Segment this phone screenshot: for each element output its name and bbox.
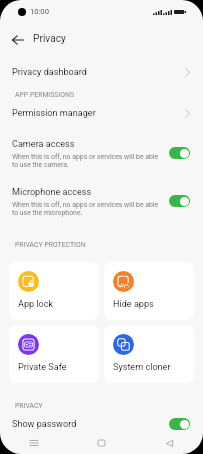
staticText: 10:00 <box>30 7 49 16</box>
button[interactable]: Navigate back <box>6 28 30 52</box>
staticText: to use the microphone. <box>12 209 83 217</box>
button[interactable]: Recent apps <box>0 432 67 454</box>
button[interactable]: Private Safe <box>9 325 99 383</box>
staticText: Private Safe <box>18 362 67 373</box>
button[interactable]: Microphone access <box>0 184 203 224</box>
staticText: Privacy <box>33 33 66 45</box>
staticText: Privacy dashboard <box>12 67 87 78</box>
button[interactable]: App lock <box>9 262 99 320</box>
staticText: Microphone access <box>12 187 92 198</box>
staticText: Permission manager <box>12 108 96 119</box>
staticText: Show password <box>12 419 77 430</box>
button[interactable]: Permission manager <box>0 102 203 124</box>
button[interactable]: Toggle, on <box>169 195 190 207</box>
staticText: Hide apps <box>113 299 154 310</box>
button[interactable]: Toggle, on <box>169 147 190 159</box>
staticText: When this is off, no apps or services wi… <box>12 153 159 161</box>
staticText: When this is off, no apps or services wi… <box>12 201 159 209</box>
staticText: PRIVACY <box>15 402 43 410</box>
button[interactable]: Hide apps <box>104 262 194 320</box>
button[interactable]: Show password <box>0 413 203 435</box>
button[interactable]: System cloner <box>104 325 194 383</box>
button[interactable]: Home <box>67 432 135 454</box>
staticText: to use the camera. <box>12 161 69 169</box>
staticText: Camera access <box>12 139 75 150</box>
staticText: PRIVACY PROTECTION <box>15 241 86 249</box>
button[interactable]: Back <box>135 432 203 454</box>
button[interactable]: Toggle, on <box>169 418 190 430</box>
staticText: APP PERMISSIONS <box>15 91 75 99</box>
button[interactable]: Camera access <box>0 136 203 176</box>
staticText: App lock <box>18 299 54 310</box>
staticText: System cloner <box>113 362 171 373</box>
button[interactable]: Privacy dashboard <box>0 61 203 83</box>
